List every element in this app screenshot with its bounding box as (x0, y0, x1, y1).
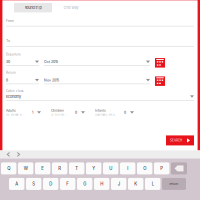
staticText: Economy (6, 94, 21, 99)
staticText: (Less than 2 yrs old) (95, 113, 116, 116)
staticText: Nov 2015 (44, 78, 59, 82)
staticText: Departure (6, 53, 21, 56)
button[interactable]: Y (86, 162, 101, 174)
button[interactable]: A (9, 178, 24, 190)
button[interactable]: One way (52, 3, 90, 12)
button[interactable]: 30 (6, 60, 39, 66)
staticText: 0 (124, 110, 126, 114)
staticText: From (6, 18, 14, 23)
button[interactable]: Round trip (14, 3, 52, 12)
button[interactable]: E (35, 162, 50, 174)
staticText: T (75, 166, 78, 171)
button[interactable]: W (18, 162, 33, 174)
staticText: One way (63, 5, 78, 10)
button[interactable]: O (137, 162, 152, 174)
button[interactable]: T (69, 162, 84, 174)
button[interactable]: Choose Departure date (155, 58, 165, 68)
button[interactable]: Economy (6, 94, 194, 101)
staticText: return (169, 182, 178, 186)
staticText: Q (7, 166, 10, 171)
button[interactable]: H (94, 178, 109, 190)
staticText: L (152, 181, 154, 186)
button[interactable]: Q (1, 162, 16, 174)
button[interactable]: R (52, 162, 67, 174)
staticText: P (160, 166, 163, 171)
staticText: Cabin class (6, 89, 23, 93)
button[interactable]: Previous field (5, 151, 11, 158)
staticText: Children (51, 109, 64, 113)
staticText: SEARCH (170, 139, 182, 142)
button[interactable]: G (77, 178, 92, 190)
staticText: Oct 2015 (44, 60, 58, 64)
button[interactable]: U (103, 162, 118, 174)
staticText: (2 to 11 yrs old) (51, 113, 67, 116)
staticText: Return (6, 71, 16, 74)
staticText: A (15, 181, 18, 186)
button[interactable]: Infants (95, 105, 134, 120)
button[interactable]: From (6, 18, 194, 27)
staticText: Adults (6, 109, 16, 113)
staticText: 0 (75, 110, 77, 114)
staticText: K (134, 181, 137, 186)
staticText: 6 (6, 78, 8, 82)
staticText: 30 (6, 60, 10, 64)
staticText: To (6, 39, 10, 43)
staticText: 1 (32, 110, 33, 114)
button[interactable]: J (111, 178, 126, 190)
staticText: S (32, 181, 35, 186)
staticText: D (49, 181, 52, 186)
button[interactable]: 6 (6, 78, 39, 84)
staticText: Infants (95, 109, 106, 113)
staticText: I (127, 166, 128, 171)
button[interactable]: Delete (171, 162, 187, 174)
button[interactable]: Next field (15, 151, 22, 158)
button[interactable]: SEARCH (166, 135, 194, 145)
button[interactable]: F (60, 178, 75, 190)
staticText: F (66, 181, 69, 186)
button[interactable]: Children (51, 105, 85, 120)
staticText: Round trip (24, 5, 41, 10)
staticText: O (143, 166, 146, 171)
button[interactable]: Choose Return date (155, 76, 165, 86)
button[interactable]: To (6, 39, 194, 47)
button[interactable]: Oct 2015 (44, 60, 150, 66)
staticText: G (83, 181, 86, 186)
staticText: R (58, 166, 61, 171)
staticText: H (100, 181, 103, 186)
button[interactable]: P (154, 162, 169, 174)
button[interactable]: return (162, 178, 186, 190)
button[interactable]: D (43, 178, 58, 190)
button[interactable]: K (128, 178, 143, 190)
staticText: W (24, 166, 28, 171)
staticText: E (41, 166, 44, 171)
button[interactable]: Adults (6, 105, 41, 120)
button[interactable]: Nov 2015 (44, 78, 150, 84)
button[interactable]: L (145, 178, 160, 190)
button[interactable]: S (26, 178, 41, 190)
staticText: (12 yrs and above) (6, 113, 24, 116)
staticText: U (109, 166, 112, 171)
staticText: J (118, 181, 120, 186)
staticText: Y (92, 166, 95, 171)
button[interactable]: I (120, 162, 135, 174)
